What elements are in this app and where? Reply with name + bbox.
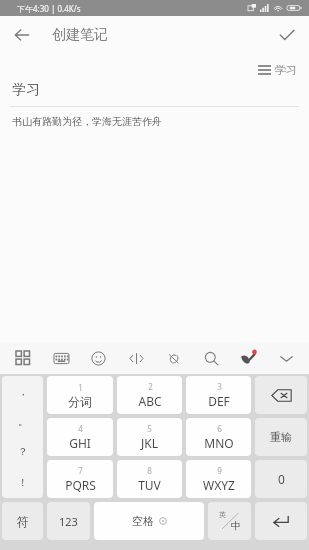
staticText: 2 [148,381,153,392]
staticText: 空格 [132,514,154,528]
staticText: JKL [141,435,158,451]
staticText: 分词 [68,394,92,409]
button[interactable]: Apps [10,345,36,371]
staticText: 符 [17,514,29,529]
button[interactable]: 9 [186,460,251,498]
staticText: WXYZ [203,477,235,493]
button[interactable]: Enter [255,502,307,540]
staticText: ？ [18,445,28,458]
staticText: ， [18,385,28,398]
button[interactable]: 0 [255,460,307,498]
staticText: 书山有路勤为径，学海无涯苦作舟 [12,115,162,128]
staticText: 7 [78,465,83,476]
staticText: DEF [208,393,230,409]
button[interactable]: ！ [2,467,43,498]
button[interactable]: 符 [2,502,43,540]
button[interactable]: Hide keyboard [273,345,299,371]
staticText: PQRS [65,477,96,493]
button[interactable]: Backspace [255,376,307,414]
staticText: 123 [59,514,78,529]
staticText: 下午4:30 | 0.4K/s [17,3,81,14]
staticText: 6 [217,423,222,434]
staticText: 4 [78,423,83,434]
button[interactable]: 123 [47,502,90,540]
button[interactable]: Cursor move [123,345,149,371]
staticText: ！ [18,476,28,489]
button[interactable]: 5 [117,418,182,456]
staticText: 9 [217,465,222,476]
staticText: 英 [219,510,226,519]
button[interactable]: 6 [186,418,251,456]
staticText: GHI [69,435,91,451]
button[interactable]: 空格 [94,502,204,540]
button[interactable]: Keyboard layout [48,345,74,371]
staticText: 3 [217,381,222,392]
staticText: 重输 [270,430,292,444]
button[interactable]: Handwriting [235,345,261,371]
button[interactable]: 3 [186,376,251,414]
staticText: 学习 [275,63,297,77]
staticText: ABC [138,393,162,409]
button[interactable]: Emoji [85,345,111,371]
button[interactable]: Back [5,18,39,52]
staticText: 。 [18,415,28,428]
button[interactable]: 2 [117,376,182,414]
button[interactable]: 重输 [255,418,307,456]
button[interactable]: 1 [47,376,113,414]
staticText: 中 [231,519,241,532]
button[interactable]: 4 [47,418,113,456]
button[interactable]: Attach [160,345,186,371]
button[interactable]: 。 [2,406,43,436]
staticText: 1 [78,382,83,393]
button[interactable]: Search [198,345,224,371]
staticText: MNO [204,435,234,451]
button[interactable]: ， [2,376,43,406]
button[interactable]: 8 [117,460,182,498]
staticText: 学习 [12,81,40,99]
button[interactable]: 学习 [255,60,300,80]
button[interactable]: Save note [270,18,304,52]
staticText: 5 [147,423,152,434]
button[interactable]: Switch language [208,502,251,540]
button[interactable]: 7 [47,460,113,498]
staticText: TUV [138,477,161,493]
button[interactable]: ？ [2,436,43,467]
staticText: 8 [147,465,152,476]
staticText: 0 [278,471,285,487]
staticText: 创建笔记 [52,26,108,44]
